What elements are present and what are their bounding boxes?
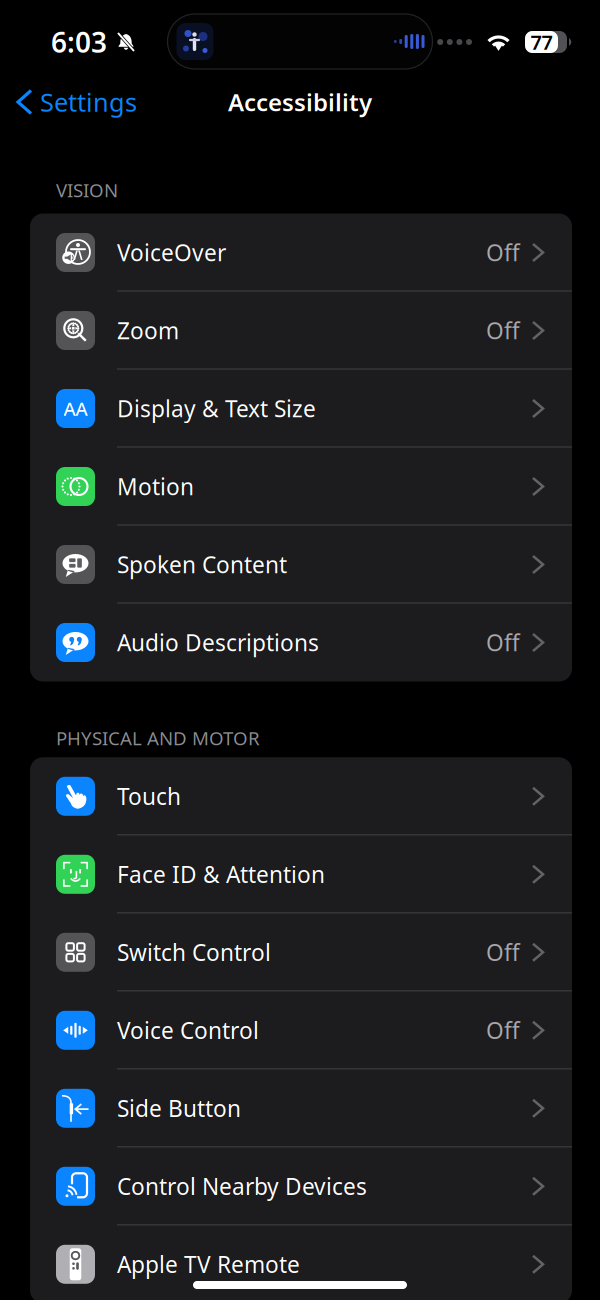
staticText: Settings xyxy=(40,85,137,119)
button[interactable]: VoiceOver xyxy=(30,213,572,291)
button[interactable]: Voice Control xyxy=(30,991,572,1069)
staticText: Side Button xyxy=(117,1093,241,1123)
staticText: Off xyxy=(486,937,520,967)
button[interactable]: Spoken Content xyxy=(30,525,572,603)
staticText: Motion xyxy=(117,471,194,501)
staticText: Touch xyxy=(117,781,181,811)
button[interactable]: Control Nearby Devices xyxy=(30,1147,572,1225)
button[interactable]: Face ID & Attention xyxy=(30,835,572,913)
staticText: Apple TV Remote xyxy=(117,1249,300,1279)
staticText: Zoom xyxy=(117,315,179,345)
staticText: Off xyxy=(486,1015,520,1045)
staticText: Off xyxy=(486,627,520,657)
button[interactable]: Settings xyxy=(0,79,137,125)
button[interactable]: Apple TV Remote xyxy=(30,1225,572,1300)
button[interactable]: Switch Control xyxy=(30,913,572,991)
staticText: Switch Control xyxy=(117,937,271,967)
staticText: Face ID & Attention xyxy=(117,859,325,889)
staticText: 6:03 xyxy=(51,23,107,61)
staticText: Accessibility xyxy=(228,86,372,118)
staticText: PHYSICAL AND MOTOR xyxy=(56,725,260,750)
staticText: Display & Text Size xyxy=(117,393,316,423)
staticText: Audio Descriptions xyxy=(117,627,319,657)
staticText: AA xyxy=(63,396,87,421)
button[interactable]: Touch xyxy=(30,757,572,835)
button[interactable]: Side Button xyxy=(30,1069,572,1147)
staticText: Spoken Content xyxy=(117,549,287,579)
staticText: Voice Control xyxy=(117,1015,259,1045)
staticText: Off xyxy=(486,315,520,345)
button[interactable]: Zoom xyxy=(30,291,572,369)
staticText: 77 xyxy=(530,29,552,55)
staticText: Control Nearby Devices xyxy=(117,1171,367,1201)
button[interactable]: Motion xyxy=(30,447,572,525)
button[interactable]: Audio Descriptions xyxy=(30,603,572,681)
staticText: VoiceOver xyxy=(117,237,226,267)
staticText: VISION xyxy=(56,178,118,202)
button[interactable]: AA xyxy=(30,369,572,447)
staticText: Off xyxy=(486,237,520,267)
